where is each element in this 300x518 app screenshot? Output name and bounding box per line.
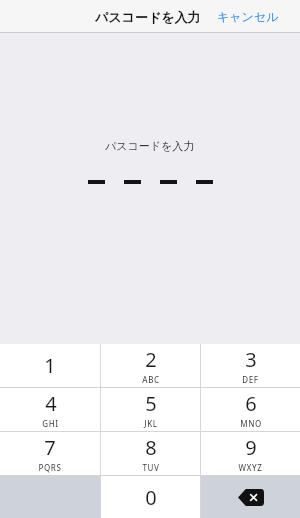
button[interactable]: 5 <box>101 388 200 431</box>
button[interactable]: 2 <box>101 344 200 387</box>
button[interactable]: 0 <box>101 476 200 518</box>
staticText: DEF <box>242 374 259 385</box>
button[interactable]: 4 <box>0 388 100 431</box>
staticText: ABC <box>142 374 160 385</box>
button[interactable]: 6 <box>201 388 300 431</box>
staticText: 6 <box>245 390 257 417</box>
button[interactable]: 7 <box>0 432 100 475</box>
staticText: 3 <box>245 346 257 373</box>
staticText: WXYZ <box>238 462 263 473</box>
staticText: PQRS <box>38 462 62 473</box>
staticText: GHI <box>42 418 59 429</box>
staticText: パスコードを入力 <box>105 139 195 153</box>
staticText: 1 <box>44 352 56 379</box>
staticText: 8 <box>145 434 157 461</box>
staticText: 9 <box>245 434 257 461</box>
button[interactable]: 8 <box>101 432 200 475</box>
button[interactable]: キャンセル <box>213 5 283 28</box>
staticText: MNO <box>240 418 262 429</box>
staticText: 5 <box>145 390 157 417</box>
staticText: 4 <box>45 390 57 417</box>
staticText: 0 <box>145 484 157 511</box>
button[interactable]: 3 <box>201 344 300 387</box>
button[interactable]: 1 <box>0 344 100 387</box>
staticText: 2 <box>145 346 157 373</box>
button[interactable]: Delete <box>201 476 300 518</box>
staticText: TUV <box>142 462 160 473</box>
staticText: キャンセル <box>217 9 279 24</box>
staticText: 7 <box>44 434 56 461</box>
button[interactable]: 9 <box>201 432 300 475</box>
staticText: パスコードを入力 <box>95 9 201 25</box>
staticText: JKL <box>144 418 158 429</box>
